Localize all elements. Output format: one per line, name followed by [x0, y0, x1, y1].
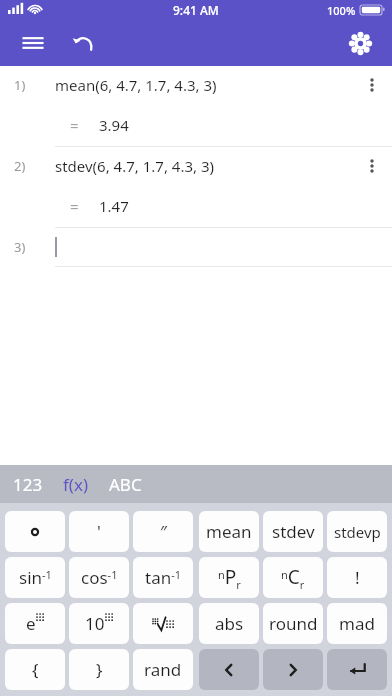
staticText: stdev [272, 520, 315, 543]
button[interactable]: 1) [0, 66, 392, 146]
staticText: tan-1 [145, 566, 182, 589]
staticText: 123 [13, 473, 43, 496]
button[interactable]: 3) [0, 228, 392, 266]
button[interactable]: Undo [62, 22, 104, 64]
button[interactable]: More options [352, 147, 392, 185]
staticText: cos-1 [81, 566, 118, 589]
staticText: round [269, 612, 318, 635]
button[interactable]: Move left [199, 649, 259, 690]
staticText: e [26, 612, 36, 635]
button[interactable]: stdev [263, 511, 323, 552]
button[interactable]: 10 [69, 603, 129, 644]
button[interactable]: } [69, 649, 129, 690]
button[interactable]: { [5, 649, 65, 690]
staticText: } [96, 658, 103, 681]
button[interactable]: nPr [199, 557, 259, 598]
button[interactable]: cos-1 [69, 557, 129, 598]
button[interactable]: ' [69, 511, 129, 552]
staticText: 1) [14, 76, 26, 94]
staticText: 100% [327, 3, 356, 18]
button[interactable]: rand [133, 649, 193, 690]
staticText: ' [97, 520, 101, 543]
staticText: 9:41 AM [173, 2, 219, 18]
staticText: mean(6, 4.7, 1.7, 4.3, 3) [55, 75, 217, 95]
staticText: stdevp [334, 522, 381, 542]
staticText: ! [355, 566, 360, 589]
button[interactable]: sin-1 [5, 557, 65, 598]
staticText: 10 [85, 612, 105, 635]
button[interactable]: nCr [263, 557, 323, 598]
button[interactable]: abs [199, 603, 259, 644]
button[interactable]: e [5, 603, 65, 644]
button[interactable]: Menu [12, 22, 54, 64]
staticText: f(x) [63, 473, 89, 496]
staticText: nCr [281, 564, 305, 592]
staticText: abs [215, 612, 244, 635]
button[interactable]: 123 [10, 469, 46, 500]
button[interactable]: round [263, 603, 323, 644]
button[interactable]: Settings [338, 21, 382, 65]
button[interactable]: ABC [106, 469, 145, 500]
staticText: mean [206, 520, 252, 543]
staticText: sin-1 [19, 566, 52, 589]
button[interactable]: Enter [327, 649, 387, 690]
staticText: = [70, 115, 79, 135]
button[interactable]: ″ [133, 511, 193, 552]
button[interactable]: tan-1 [133, 557, 193, 598]
button[interactable]: f(x) [60, 469, 92, 500]
staticText: 1.47 [99, 196, 129, 216]
staticText: nPr [218, 564, 241, 592]
button[interactable]: mad [327, 603, 387, 644]
button[interactable]: More options [352, 66, 392, 104]
button[interactable]: Move right [263, 649, 323, 690]
staticText: mad [339, 612, 375, 635]
staticText: = [70, 196, 79, 216]
staticText: { [32, 658, 39, 681]
staticText: rand [144, 658, 182, 681]
button[interactable]: stdevp [327, 511, 387, 552]
staticText: 3.94 [99, 115, 129, 135]
button[interactable]: mean [199, 511, 259, 552]
staticText: ″ [160, 520, 167, 543]
button[interactable]: ! [327, 557, 387, 598]
button[interactable]: 2) [0, 147, 392, 227]
staticText: stdev(6, 4.7, 1.7, 4.3, 3) [55, 156, 214, 176]
button[interactable] [133, 603, 193, 644]
staticText: 2) [14, 157, 26, 175]
staticText: ABC [109, 473, 142, 496]
staticText: 3) [14, 238, 26, 256]
button[interactable] [5, 511, 65, 552]
